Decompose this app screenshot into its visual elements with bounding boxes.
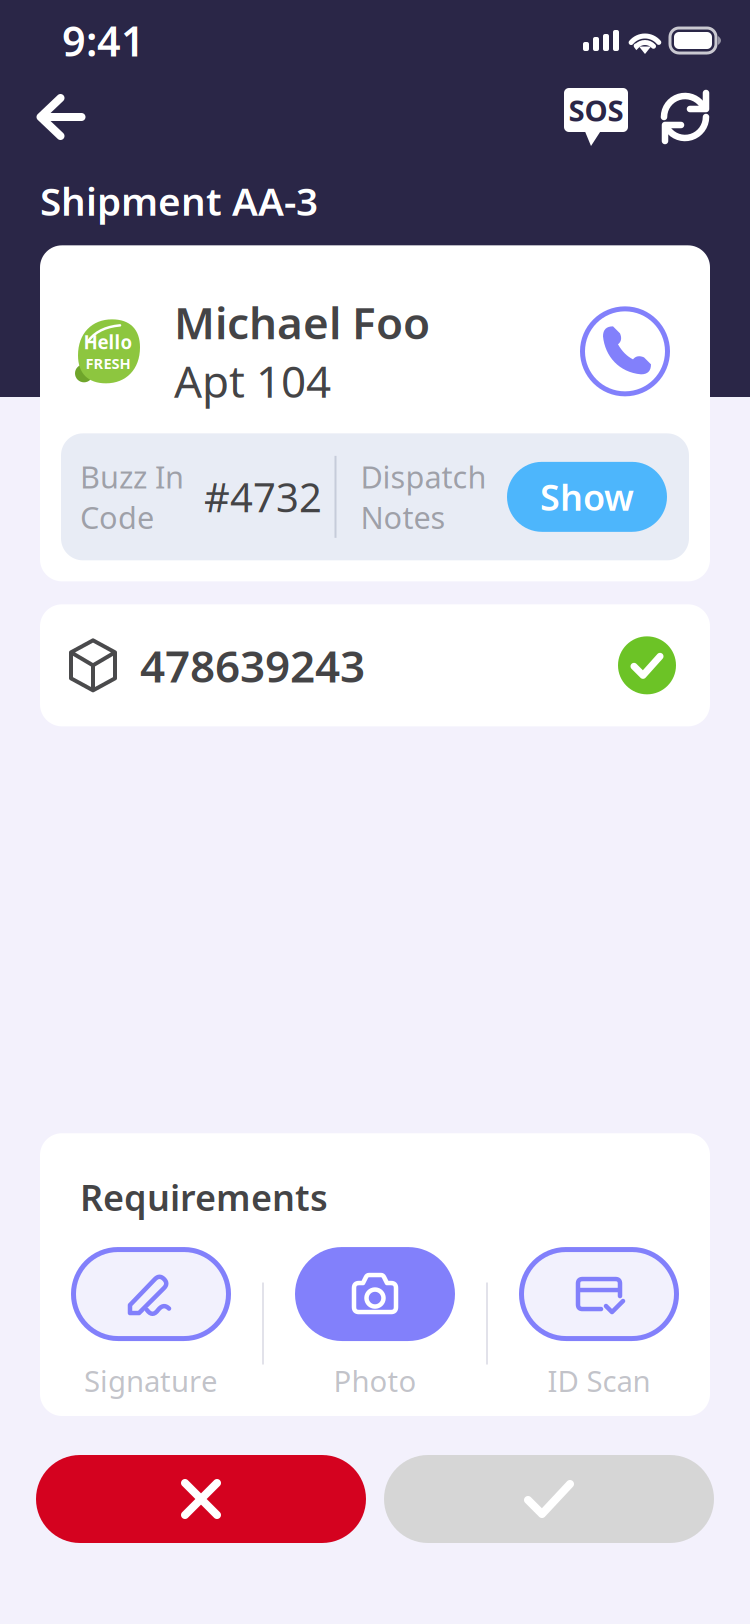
staticText: FRESH — [85, 353, 130, 373]
staticText: Requirements — [80, 1173, 328, 1221]
staticText: Hello — [83, 330, 132, 354]
staticText: #4732 — [204, 470, 322, 523]
staticText: Shipment AA-3 — [40, 175, 318, 226]
button[interactable]: Refresh — [650, 81, 722, 153]
staticText: ID Scan — [547, 1361, 650, 1400]
button[interactable]: Complete delivery — [384, 1455, 714, 1543]
button[interactable]: Show — [507, 462, 667, 532]
staticText: 9:41 — [62, 13, 145, 68]
button[interactable]: ID Scan — [488, 1247, 710, 1400]
staticText: Dispatch Notes — [360, 456, 486, 537]
staticText: 478639243 — [140, 636, 365, 694]
button[interactable]: Signature — [40, 1247, 262, 1400]
button[interactable]: Decline delivery — [36, 1455, 366, 1543]
staticText: Show — [540, 473, 634, 521]
staticText: Photo — [333, 1361, 416, 1400]
button[interactable]: 478639243 — [40, 604, 710, 726]
staticText: Apt 104 — [174, 351, 331, 410]
staticText: SOS — [568, 90, 623, 129]
staticText: Buzz In Code — [80, 456, 184, 537]
button[interactable]: Emergency SOS — [560, 81, 632, 153]
button[interactable]: Back — [25, 81, 97, 153]
button[interactable]: Call Michael Foo — [580, 306, 670, 396]
staticText: Michael Foo — [174, 293, 430, 351]
staticText: Signature — [84, 1361, 218, 1400]
button[interactable]: Photo — [264, 1247, 486, 1400]
